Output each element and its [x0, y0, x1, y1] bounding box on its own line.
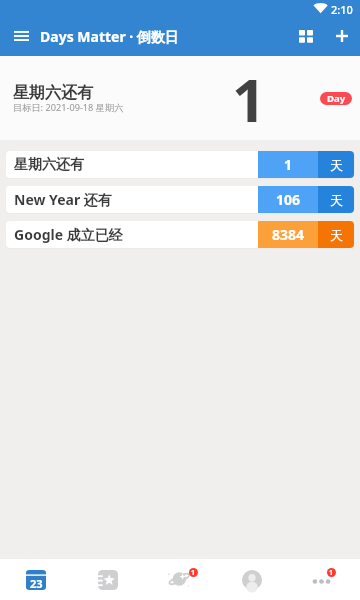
- button[interactable]: Favorite events: [72, 559, 144, 600]
- staticText: 106: [276, 190, 301, 209]
- staticText: 天: [330, 157, 343, 173]
- button[interactable]: Add: [324, 18, 360, 54]
- button[interactable]: 星期六还有: [6, 151, 354, 178]
- staticText: 星期六还有: [14, 156, 258, 174]
- button[interactable]: Grid view: [288, 18, 324, 54]
- staticText: 1: [284, 155, 293, 174]
- button[interactable]: More: [288, 559, 360, 600]
- staticText: Day: [327, 92, 346, 105]
- staticText: 23: [30, 576, 43, 591]
- staticText: 目标日: 2021-09-18 星期六: [13, 101, 124, 114]
- button[interactable]: Google 成立已经: [6, 221, 354, 248]
- staticText: Google 成立已经: [14, 225, 258, 244]
- staticText: Days Matter · 倒数日: [40, 27, 179, 46]
- staticText: 1: [329, 568, 334, 577]
- button[interactable]: New Year 还有: [6, 186, 354, 213]
- staticText: 天: [330, 192, 343, 208]
- button[interactable]: Calendar: [0, 559, 72, 600]
- staticText: 8384: [272, 225, 305, 244]
- staticText: 1: [191, 568, 196, 577]
- staticText: 1: [232, 59, 266, 139]
- staticText: New Year 还有: [14, 190, 258, 209]
- staticText: 天: [330, 227, 343, 243]
- button[interactable]: 星期六还有: [0, 56, 360, 140]
- button[interactable]: Discover: [144, 559, 216, 600]
- staticText: 2:10: [331, 2, 353, 17]
- button[interactable]: Profile: [216, 559, 288, 600]
- staticText: 星期六还有: [13, 83, 93, 103]
- button[interactable]: Menu: [3, 18, 39, 54]
